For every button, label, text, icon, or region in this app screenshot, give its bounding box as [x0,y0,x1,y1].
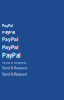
staticText: PayPal [2,30,15,35]
staticText: PayPal [2,44,18,50]
staticText: Send & Request [2,72,27,76]
staticText: PayPal [2,24,13,28]
staticText: Send & Request [2,61,26,64]
staticText: PayPal [2,37,18,42]
staticText: PayPal [2,52,21,59]
staticText: Send & Request [2,66,27,70]
